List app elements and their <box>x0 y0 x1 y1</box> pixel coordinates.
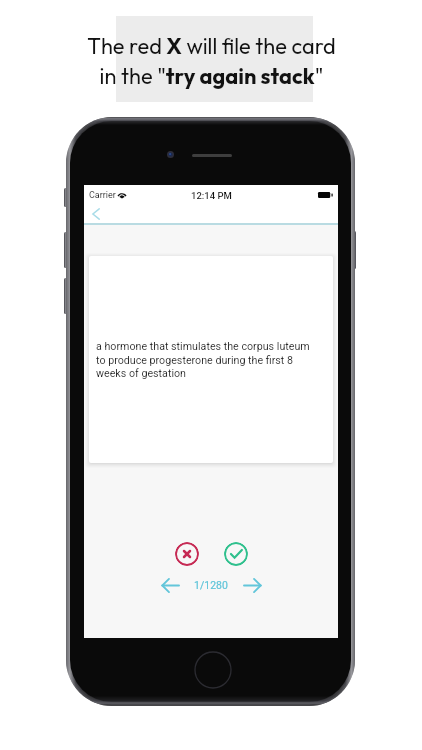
staticText: 12:14 PM <box>191 190 232 201</box>
button[interactable]: Correct <box>224 542 248 566</box>
button[interactable]: Previous card <box>159 576 181 594</box>
staticText: 1/1280 <box>194 579 228 591</box>
button[interactable]: Next card <box>241 576 263 594</box>
button[interactable]: Incorrect, try again <box>175 542 199 566</box>
staticText: Carrier <box>89 190 116 201</box>
staticText: The red X will file the card in the "try… <box>87 32 336 89</box>
button[interactable]: Back <box>84 204 108 224</box>
staticText: a hormone that stimulates the corpus lut… <box>96 340 321 379</box>
